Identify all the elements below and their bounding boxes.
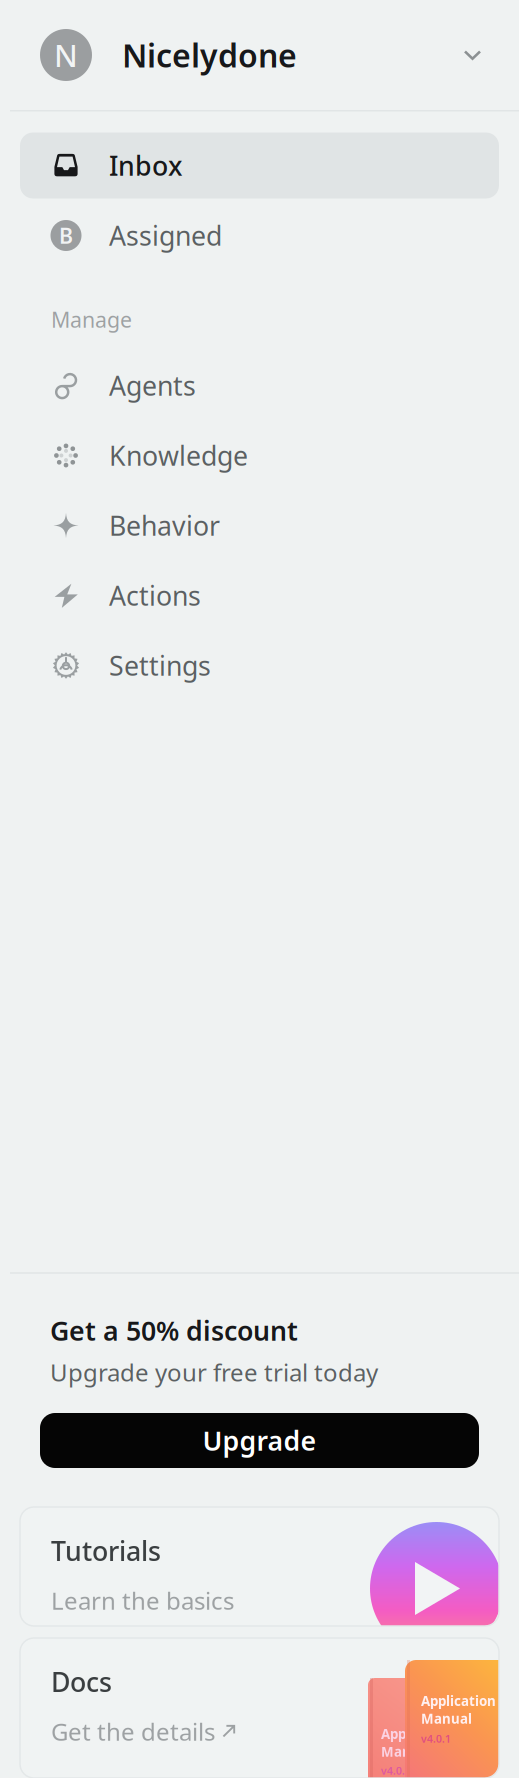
- button[interactable]: Actions: [20, 562, 499, 628]
- button[interactable]: Agents: [20, 352, 499, 418]
- staticText: Settings: [109, 648, 211, 683]
- staticText: Appl: [381, 1725, 410, 1743]
- button[interactable]: Behavior: [20, 492, 499, 558]
- staticText: Inbox: [109, 148, 182, 183]
- staticText: B: [59, 221, 73, 250]
- staticText: Assigned: [109, 218, 222, 253]
- staticText: Agents: [109, 368, 196, 403]
- staticText: Knowledge: [109, 438, 248, 473]
- staticText: N: [54, 35, 78, 75]
- staticText: Man: [381, 1743, 411, 1760]
- staticText: v4.0.1: [421, 1731, 451, 1746]
- staticText: Docs: [51, 1664, 112, 1699]
- staticText: v4.0.0: [381, 1763, 411, 1778]
- staticText: Manual: [421, 1710, 472, 1727]
- button[interactable]: Docs: [20, 1638, 499, 1778]
- staticText: Application: [421, 1692, 496, 1710]
- staticText: Get the details: [51, 1715, 215, 1747]
- staticText: Upgrade your free trial today: [50, 1356, 378, 1388]
- staticText: Behavior: [109, 508, 220, 543]
- staticText: Tutorials: [51, 1533, 161, 1568]
- button[interactable]: Upgrade: [40, 1413, 479, 1468]
- staticText: Learn the basics: [51, 1584, 234, 1616]
- button[interactable]: Tutorials: [20, 1507, 499, 1626]
- staticText: Manage: [51, 305, 132, 334]
- staticText: Upgrade: [202, 1423, 316, 1458]
- button[interactable]: Knowledge: [20, 422, 499, 488]
- button[interactable]: Inbox: [20, 132, 499, 198]
- button[interactable]: B: [20, 202, 499, 268]
- staticText: Actions: [109, 578, 201, 613]
- button[interactable]: N: [0, 0, 519, 110]
- staticText: Nicelydone: [122, 34, 297, 76]
- staticText: Get a 50% discount: [50, 1313, 298, 1348]
- button[interactable]: Settings: [20, 632, 499, 698]
